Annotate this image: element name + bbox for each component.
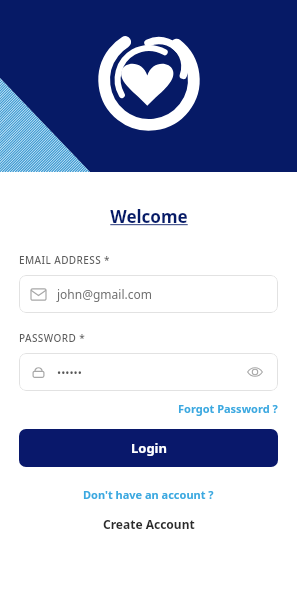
staticText: Welcome [110,205,188,228]
button[interactable]: Don't have an account ? [83,487,214,502]
staticText: PASSWORD * [19,331,86,345]
button[interactable]: Forgot Password ? [178,401,278,416]
button[interactable]: •••••• [19,353,278,391]
button[interactable]: john@gmail.com [19,275,278,313]
button[interactable]: Login [19,429,278,467]
staticText: john@gmail.com [57,286,152,302]
button[interactable]: Create Account [103,516,195,532]
staticText: EMAIL ADDRESS * [19,253,110,267]
staticText: •••••• [57,365,82,380]
staticText: Forgot Password ? [178,401,278,416]
staticText: Login [131,439,167,457]
button[interactable]: Show password [244,361,266,383]
staticText: Don't have an account ? [83,487,214,502]
staticText: Create Account [103,516,195,532]
